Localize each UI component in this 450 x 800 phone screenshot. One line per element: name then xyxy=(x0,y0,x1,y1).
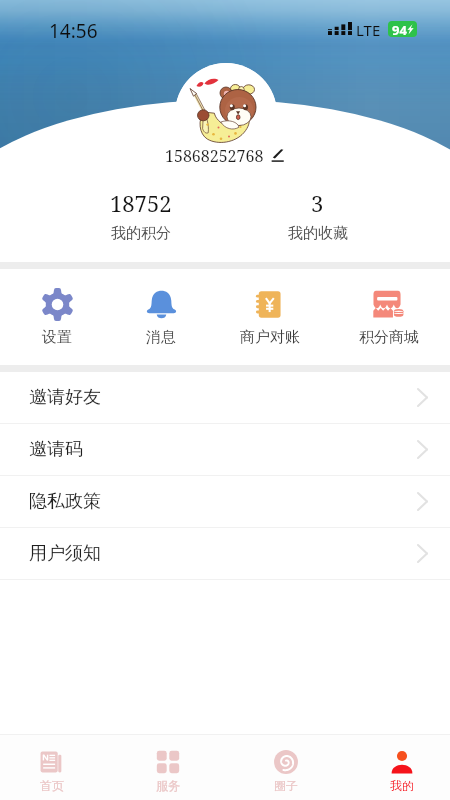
staticText: 商户对账 xyxy=(240,328,300,347)
button[interactable]: 首页 xyxy=(0,735,108,800)
button[interactable]: 消息 xyxy=(105,269,217,365)
staticText: 服务 xyxy=(156,778,180,793)
staticText: 设置 xyxy=(42,328,72,347)
staticText: 3 xyxy=(311,188,324,218)
staticText: 我的 xyxy=(390,778,414,793)
staticText: 94 xyxy=(392,21,407,37)
button[interactable]: 圈子 xyxy=(229,735,342,800)
button[interactable]: 18752 xyxy=(28,188,253,240)
button[interactable]: 邀请码 xyxy=(0,424,450,475)
button[interactable]: 用户须知 xyxy=(0,528,450,579)
staticText: LTE xyxy=(356,20,381,40)
staticText: 14:56 xyxy=(49,18,98,44)
staticText: 我的收藏 xyxy=(288,224,348,240)
button[interactable]: 服务 xyxy=(112,735,224,800)
staticText: 18752 xyxy=(110,188,172,218)
staticText: 用户须知 xyxy=(29,542,101,565)
button[interactable]: 邀请好友 xyxy=(0,372,450,423)
button[interactable]: 商户对账 xyxy=(213,269,326,365)
button[interactable]: Profile avatar xyxy=(175,63,277,165)
staticText: 首页 xyxy=(40,778,64,793)
button[interactable]: 隐私政策 xyxy=(0,476,450,527)
staticText: 邀请好友 xyxy=(29,386,101,409)
button[interactable]: 设置 xyxy=(1,269,113,365)
button[interactable]: 积分商城 xyxy=(332,269,445,365)
staticText: 消息 xyxy=(146,328,176,347)
staticText: 圈子 xyxy=(274,778,298,793)
button[interactable]: 我的 xyxy=(345,735,450,800)
staticText: 15868252768 xyxy=(165,145,264,165)
button[interactable]: Edit nickname xyxy=(269,147,285,163)
staticText: 积分商城 xyxy=(359,328,419,347)
staticText: 我的积分 xyxy=(111,224,171,240)
button[interactable]: 3 xyxy=(205,188,430,240)
staticText: 隐私政策 xyxy=(29,490,101,513)
staticText: 邀请码 xyxy=(29,438,83,461)
